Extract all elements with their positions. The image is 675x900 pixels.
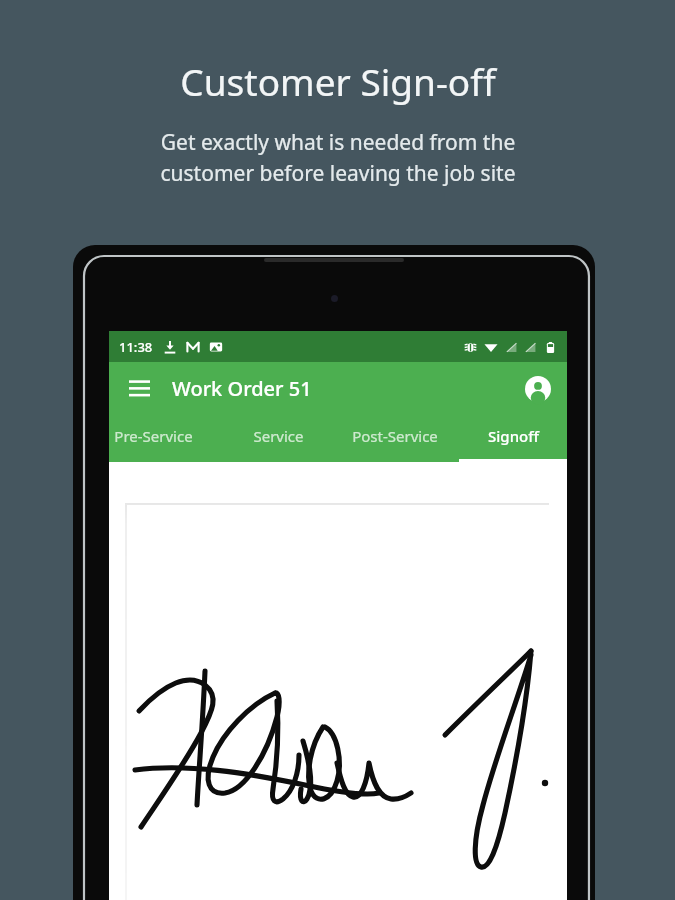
staticText: Pre-Service [114,426,193,446]
staticText: 11:38 [119,338,153,356]
staticText: Get exactly what is needed from the cust… [160,128,516,187]
staticText: Signoff [488,426,539,446]
staticText: Service [253,426,304,446]
button[interactable]: Pre-Service [109,415,226,462]
button[interactable]: Account [517,368,559,410]
staticText: Post-Service [352,426,438,446]
staticText: Work Order 51 [172,375,312,402]
button[interactable]: Signature pad [127,505,551,900]
button[interactable]: Signoff [459,415,567,462]
staticText: Customer Sign-off [180,56,496,106]
button[interactable]: Open navigation menu [118,368,160,410]
button[interactable]: Post-Service [331,415,459,462]
button[interactable]: Service [226,415,331,462]
